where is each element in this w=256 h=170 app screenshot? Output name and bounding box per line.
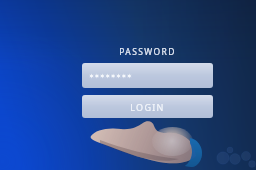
staticText: PASSWORD: [82, 46, 213, 59]
staticText: LOGIN: [82, 101, 213, 113]
button[interactable]: LOGIN: [82, 95, 213, 118]
button[interactable]: Password entry field: [82, 63, 213, 88]
